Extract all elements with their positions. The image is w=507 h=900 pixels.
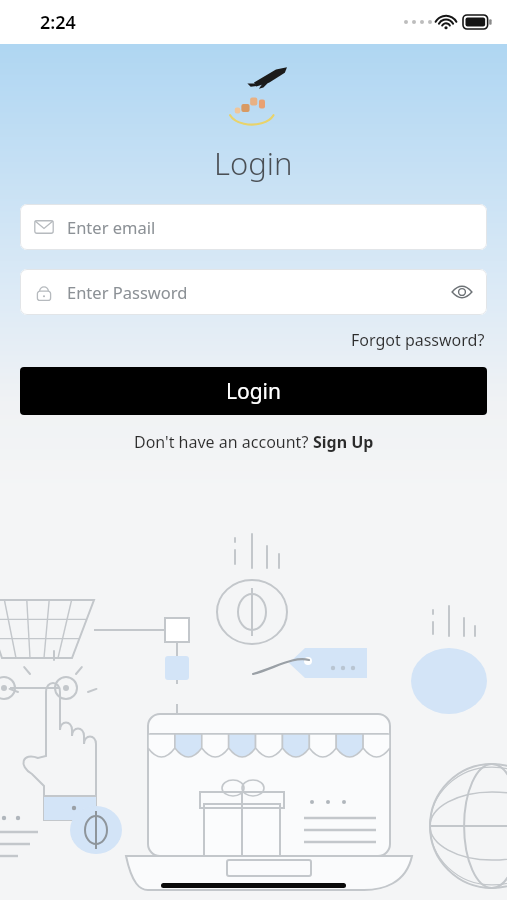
staticText: Login	[214, 142, 293, 184]
staticText: Sign Up	[313, 431, 374, 453]
button[interactable]: Enter Password	[20, 269, 487, 315]
button[interactable]: Forgot password?	[349, 327, 487, 353]
button[interactable]: Login	[20, 367, 487, 415]
button[interactable]: Enter email	[20, 204, 487, 250]
button[interactable]: Show password	[451, 281, 473, 303]
staticText: Enter email	[67, 216, 156, 238]
staticText: Forgot password?	[351, 329, 485, 351]
staticText: Login	[226, 377, 282, 406]
staticText: Don't have an account?	[134, 431, 313, 453]
staticText: Enter Password	[67, 281, 188, 303]
button[interactable]: Don't have an account?	[0, 431, 507, 453]
staticText: 2:24	[40, 10, 76, 35]
